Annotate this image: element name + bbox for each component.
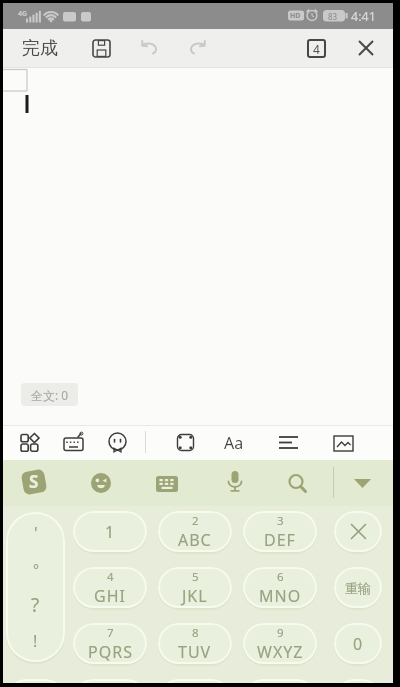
- button[interactable]: ': [6, 512, 65, 662]
- staticText: 6: [277, 569, 284, 585]
- staticText: 完成: [22, 37, 58, 60]
- button[interactable]: [329, 429, 357, 457]
- staticText: Aa: [224, 432, 244, 454]
- button[interactable]: [351, 33, 381, 63]
- staticText: 全文: 0: [31, 387, 69, 403]
- button[interactable]: 5: [158, 567, 232, 608]
- button[interactable]: 4: [73, 567, 147, 608]
- button[interactable]: [134, 33, 164, 63]
- button[interactable]: 8: [158, 623, 232, 664]
- button[interactable]: [104, 429, 131, 456]
- button[interactable]: 3: [243, 511, 317, 552]
- button[interactable]: 6: [243, 567, 317, 608]
- button[interactable]: 1: [73, 511, 147, 552]
- button[interactable]: [86, 468, 115, 497]
- staticText: PQRS: [88, 641, 133, 663]
- staticText: TUV: [178, 641, 212, 663]
- staticText: WXYZ: [257, 641, 304, 663]
- button[interactable]: [334, 511, 382, 552]
- staticText: MNO: [259, 585, 302, 607]
- button[interactable]: [334, 679, 382, 683]
- button[interactable]: [73, 679, 147, 683]
- staticText: 2: [192, 513, 199, 529]
- staticText: 4:41: [351, 8, 376, 25]
- button[interactable]: [86, 33, 116, 63]
- button[interactable]: [16, 429, 43, 456]
- button[interactable]: [220, 468, 249, 497]
- button[interactable]: S: [17, 465, 51, 499]
- button[interactable]: [6, 679, 65, 683]
- staticText: DEF: [264, 529, 296, 551]
- button[interactable]: [183, 33, 213, 63]
- button[interactable]: 0: [334, 623, 382, 664]
- staticText: ?: [31, 592, 40, 618]
- button[interactable]: 4: [307, 39, 326, 58]
- staticText: 8: [192, 625, 199, 641]
- button[interactable]: [60, 429, 87, 456]
- staticText: S: [29, 470, 39, 493]
- staticText: 83: [328, 11, 338, 22]
- staticText: 4: [313, 41, 320, 57]
- button[interactable]: [243, 679, 317, 683]
- staticText: 9: [277, 625, 284, 641]
- staticText: 1: [105, 521, 115, 543]
- staticText: 4G: [18, 9, 28, 19]
- staticText: !: [33, 630, 38, 652]
- button[interactable]: [275, 429, 302, 456]
- staticText: ABC: [178, 529, 212, 551]
- staticText: ': [34, 522, 38, 544]
- staticText: 0: [353, 633, 363, 655]
- staticText: JKL: [182, 585, 208, 607]
- staticText: 5: [192, 569, 199, 585]
- button[interactable]: 重输: [334, 567, 382, 608]
- button[interactable]: [152, 469, 181, 498]
- staticText: °: [33, 560, 39, 579]
- button[interactable]: [158, 679, 232, 683]
- button[interactable]: [172, 429, 199, 456]
- staticText: GHI: [94, 585, 126, 607]
- button[interactable]: [349, 470, 375, 496]
- button[interactable]: Aa: [218, 429, 250, 456]
- staticText: HD: [290, 11, 301, 21]
- button[interactable]: 2: [158, 511, 232, 552]
- button[interactable]: 9: [243, 623, 317, 664]
- staticText: 4: [107, 569, 114, 585]
- staticText: 7: [107, 625, 114, 641]
- staticText: 重输: [345, 580, 371, 596]
- button[interactable]: 完成: [11, 29, 69, 68]
- button[interactable]: [283, 469, 312, 498]
- staticText: 3: [277, 513, 284, 529]
- button[interactable]: 7: [73, 623, 147, 664]
